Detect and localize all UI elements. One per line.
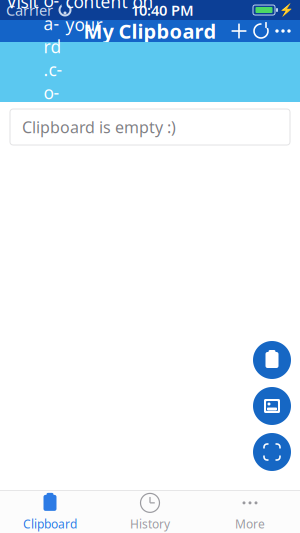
button[interactable]: More — [200, 491, 300, 533]
button[interactable]: Add — [228, 17, 250, 45]
staticText: 10:40 PM — [131, 0, 194, 20]
staticText: More — [235, 516, 265, 532]
staticText: ⚡ — [279, 3, 294, 17]
button[interactable]: Refresh — [250, 17, 272, 45]
button[interactable]: New text clip — [253, 341, 291, 379]
staticText: Carrier — [6, 0, 53, 20]
button[interactable]: Clipboard — [0, 491, 100, 533]
button[interactable]: More options — [272, 17, 294, 45]
staticText: PC. — [6, 132, 32, 155]
staticText: Visit — [6, 0, 43, 13]
staticText: My Clipboard — [83, 18, 216, 44]
button[interactable]: Scan code — [253, 433, 291, 471]
button[interactable]: New image clip — [253, 387, 291, 425]
staticText: Clipboard is empty :) — [22, 116, 176, 138]
staticText: to copy content on your — [65, 0, 153, 36]
button[interactable]: Visit — [0, 42, 300, 102]
staticText: Clipboard — [23, 516, 77, 532]
button[interactable]: History — [100, 491, 200, 533]
staticText: My-Clipboard.com — [43, 0, 65, 127]
staticText: History — [130, 516, 170, 532]
